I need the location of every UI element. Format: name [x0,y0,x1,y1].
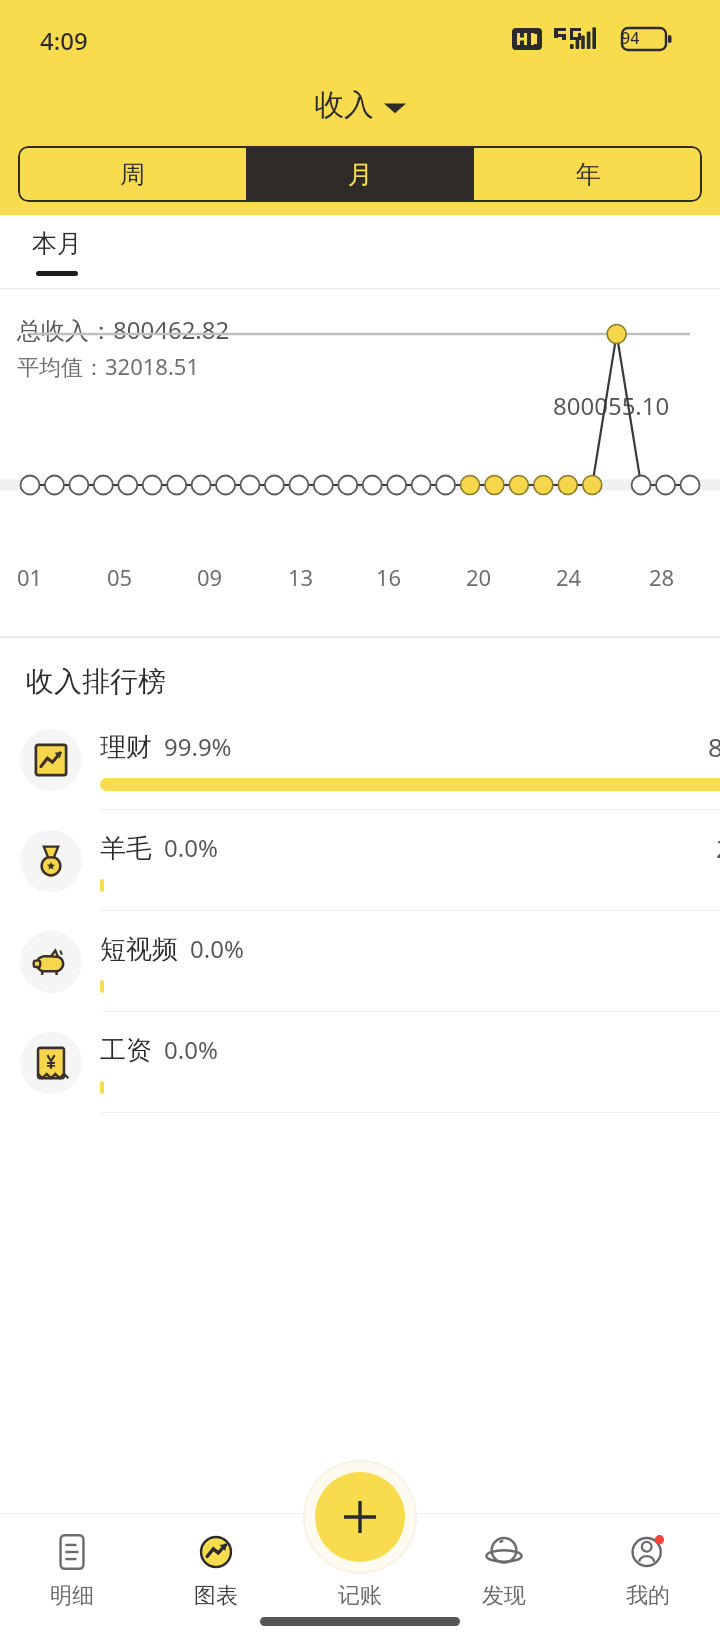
button[interactable]: 羊毛 [0,810,720,911]
button[interactable]: 明细 [0,1514,144,1610]
button[interactable]: 记账 Add record [315,1472,405,1562]
button[interactable]: 记账 [288,1514,432,1610]
staticText: 800055.10 [553,389,670,422]
staticText: 28 [649,562,675,592]
staticText: 05 [107,562,133,592]
staticText: 理财 [100,731,152,764]
staticText: 工资 [100,1034,152,1067]
button[interactable]: 年 [474,146,702,202]
button[interactable]: 我的 [576,1514,720,1610]
button[interactable]: 发现 [432,1514,576,1610]
button[interactable]: 工资 [0,1012,720,1113]
button[interactable]: 周 [18,146,246,202]
staticText: 明细 [50,1582,94,1610]
button[interactable]: 短视频 [0,911,720,1012]
button[interactable]: 理财 [0,709,720,810]
staticText: 20 [466,562,492,592]
staticText: 4:09 [40,24,88,57]
staticText: 月 [348,159,373,190]
staticText: 13 [288,562,314,592]
staticText: 94 [621,27,640,49]
staticText: 周 [120,159,145,190]
staticText: 我的 [626,1582,670,1610]
button[interactable]: 月 [246,146,474,202]
staticText: 235.62 [716,830,720,865]
staticText: 0.0% [164,831,218,864]
staticText: 年 [576,159,601,190]
staticText: 收入 [314,86,374,124]
staticText: 0.0% [164,1033,218,1066]
button[interactable]: 本月 [32,228,82,276]
staticText: 09 [197,562,223,592]
staticText: 短视频 [100,933,178,966]
button[interactable]: 收入 [304,82,416,128]
staticText: 羊毛 [100,832,152,865]
staticText: 总收入：800462.82 [17,313,230,346]
staticText: 发现 [482,1582,526,1610]
staticText: 16 [376,562,402,592]
staticText: 01 [17,562,43,592]
staticText: 平均值：32018.51 [17,351,199,381]
staticText: 本月 [32,228,82,259]
button[interactable]: 图表 [144,1514,288,1610]
staticText: 99.9% [164,730,232,763]
staticText: 24 [556,562,582,592]
staticText: 收入排行榜 [26,664,166,699]
staticText: 800016 [708,729,720,764]
staticText: 图表 [194,1582,238,1610]
staticText: 0.0% [190,932,244,965]
staticText: 记账 [338,1582,382,1610]
